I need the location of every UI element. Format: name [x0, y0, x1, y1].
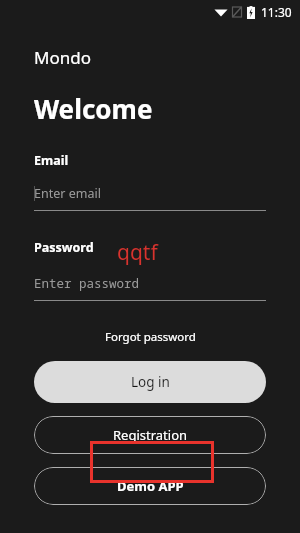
staticText: qqtf [117, 238, 158, 267]
button[interactable]: Registration [34, 416, 266, 454]
staticText: Enter password [34, 275, 140, 292]
button[interactable]: Enter password [34, 275, 266, 301]
staticText: Demo APP [117, 477, 184, 495]
staticText: Email [34, 152, 69, 169]
button[interactable]: Enter email [34, 185, 266, 211]
staticText: Enter email [34, 185, 101, 202]
staticText: Forgot password [105, 329, 196, 345]
other: Wi-Fi [214, 5, 228, 19]
staticText: Welcome [34, 91, 153, 126]
button[interactable]: Demo APP [34, 467, 266, 505]
button[interactable]: Log in [34, 361, 266, 403]
staticText: Mondo [34, 46, 91, 69]
staticText: Password [34, 239, 94, 256]
staticText: 11:30 [261, 4, 292, 20]
staticText: Registration [113, 426, 188, 444]
other: No SIM [232, 6, 242, 18]
button[interactable]: Forgot password [99, 327, 202, 347]
other: Battery charging [247, 6, 255, 19]
staticText: Log in [131, 373, 170, 391]
